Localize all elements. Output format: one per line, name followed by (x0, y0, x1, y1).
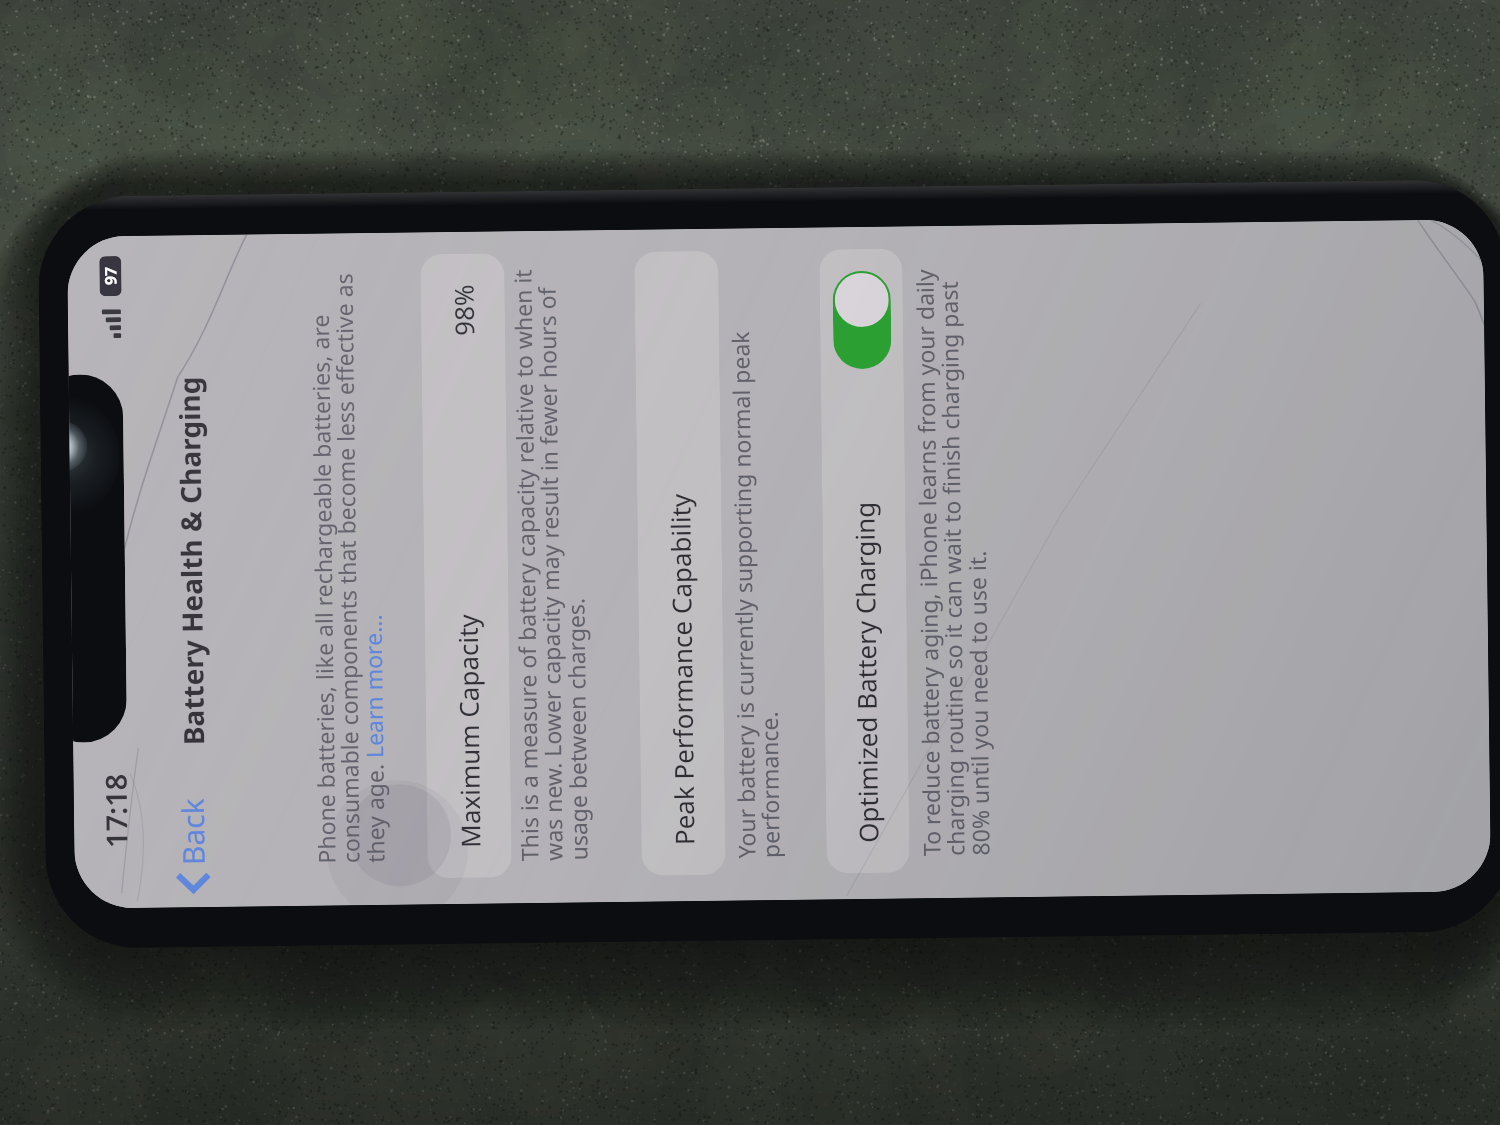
button[interactable]: Optimized Battery Charging toggle (832, 271, 892, 369)
staticText: This is a measure of battery capacity re… (506, 266, 595, 861)
staticText: Peak Performance Capability (662, 493, 701, 845)
staticText: Your battery is currently supporting nor… (723, 264, 787, 858)
button[interactable]: Peak Performance Capability (634, 251, 726, 876)
staticText: Maximum Capacity (450, 614, 487, 848)
button[interactable]: Maximum Capacity (420, 253, 512, 878)
staticText: Battery Health & Charging (170, 376, 212, 745)
button[interactable]: Back (169, 795, 216, 895)
staticText: Phone batteries, like all rechargeable b… (303, 269, 392, 864)
staticText: 98% (446, 284, 481, 336)
button[interactable]: Optimized Battery Charging (819, 248, 910, 873)
staticText: 97 (99, 266, 121, 285)
staticText: Back (172, 798, 214, 865)
staticText: To reduce battery aging, iPhone learns f… (908, 261, 997, 856)
staticText: Optimized Battery Charging (846, 501, 885, 843)
staticText: 17:18 (95, 773, 135, 848)
